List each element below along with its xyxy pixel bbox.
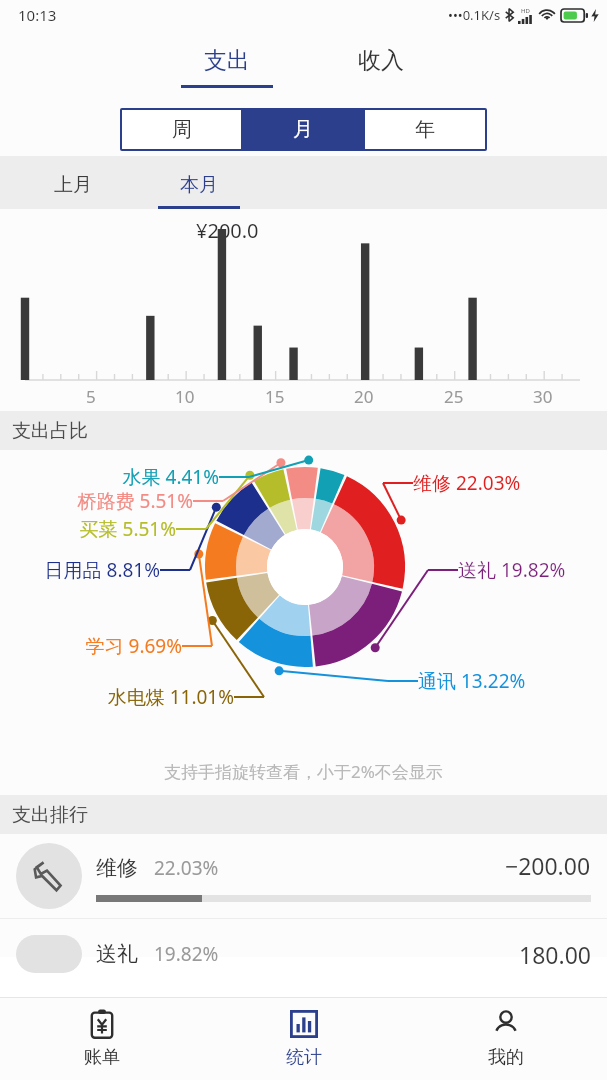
- staticText: 账单: [84, 1046, 120, 1069]
- staticText: 支出: [204, 46, 250, 75]
- staticText: 送礼: [96, 941, 138, 967]
- button[interactable]: 本月: [146, 173, 252, 209]
- button[interactable]: 周: [122, 110, 241, 149]
- button[interactable]: 账单: [0, 998, 203, 1080]
- button[interactable]: 上月: [20, 173, 126, 209]
- staticText: 日用品 8.81%: [0, 557, 160, 583]
- staticText: HD: [521, 7, 530, 15]
- staticText: 25: [444, 385, 464, 408]
- button[interactable]: 我的: [405, 998, 607, 1080]
- staticText: 支持手指旋转查看，小于2%不会显示: [164, 760, 443, 783]
- staticText: 20: [354, 385, 374, 408]
- staticText: 5: [86, 385, 96, 408]
- button[interactable]: 送礼: [0, 919, 607, 957]
- staticText: 上月: [54, 173, 92, 197]
- button[interactable]: 年: [365, 110, 485, 149]
- staticText: 统计: [286, 1046, 322, 1069]
- button[interactable]: 统计: [203, 998, 405, 1080]
- staticText: 10:13: [18, 5, 57, 25]
- staticText: 月: [293, 117, 313, 142]
- staticText: 本月: [180, 173, 218, 197]
- staticText: 支出排行: [12, 803, 88, 827]
- staticText: 30: [533, 385, 553, 408]
- button[interactable]: 月: [243, 110, 363, 149]
- staticText: 学习 9.69%: [0, 633, 182, 659]
- staticText: 桥路费 5.51%: [0, 488, 193, 514]
- staticText: 22.03%: [154, 855, 219, 881]
- staticText: 年: [415, 117, 435, 142]
- staticText: 19.82%: [154, 941, 219, 967]
- staticText: 水果 4.41%: [0, 464, 219, 490]
- staticText: 送礼 19.82%: [458, 557, 566, 583]
- staticText: 支出占比: [12, 419, 88, 443]
- staticText: −200.00: [505, 850, 591, 881]
- staticText: 10: [175, 385, 195, 408]
- button[interactable]: 支出: [157, 46, 297, 88]
- button[interactable]: 维修: [0, 834, 607, 918]
- staticText: 180.00: [519, 939, 591, 970]
- staticText: 维修: [96, 855, 138, 881]
- staticText: 15: [265, 385, 285, 408]
- staticText: 维修 22.03%: [413, 470, 521, 496]
- staticText: 我的: [488, 1046, 524, 1069]
- button[interactable]: 收入: [311, 46, 451, 88]
- staticText: 通讯 13.22%: [418, 668, 526, 694]
- staticText: 水电煤 11.01%: [0, 684, 234, 710]
- staticText: ¥200.0: [196, 217, 259, 244]
- staticText: 买菜 5.51%: [0, 516, 176, 542]
- staticText: 周: [172, 117, 192, 142]
- staticText: 收入: [358, 46, 404, 75]
- staticText: •••0.1K/s: [448, 6, 501, 24]
